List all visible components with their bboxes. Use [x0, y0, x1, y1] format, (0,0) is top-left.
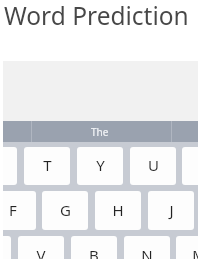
staticText: H [112, 200, 124, 220]
button[interactable]: V [18, 236, 64, 259]
button[interactable]: B [71, 236, 117, 259]
staticText: The [91, 125, 109, 139]
button[interactable]: H [95, 191, 141, 230]
button[interactable]: T [24, 147, 70, 185]
button[interactable]: Y [77, 147, 123, 185]
staticText: F [9, 200, 17, 220]
button[interactable]: Keyboard key [3, 236, 11, 259]
staticText: V [36, 245, 46, 259]
staticText: G [60, 200, 71, 220]
staticText: J [169, 200, 174, 220]
button[interactable]: M [176, 236, 198, 259]
staticText: B [89, 245, 99, 259]
staticText: T [43, 155, 52, 175]
staticText: Y [96, 155, 105, 175]
button[interactable]: F [3, 191, 36, 230]
staticText: M [192, 245, 198, 259]
button[interactable]: J [148, 191, 194, 230]
staticText: U [148, 155, 159, 175]
staticText: N [141, 245, 153, 259]
button[interactable]: Keyboard key [3, 147, 17, 185]
button[interactable]: N [124, 236, 170, 259]
button[interactable]: U [130, 147, 176, 185]
button[interactable]: The [32, 121, 171, 142]
button[interactable]: G [42, 191, 88, 230]
button[interactable]: Keyboard key [182, 147, 198, 185]
staticText: Word Prediction [4, 0, 189, 32]
